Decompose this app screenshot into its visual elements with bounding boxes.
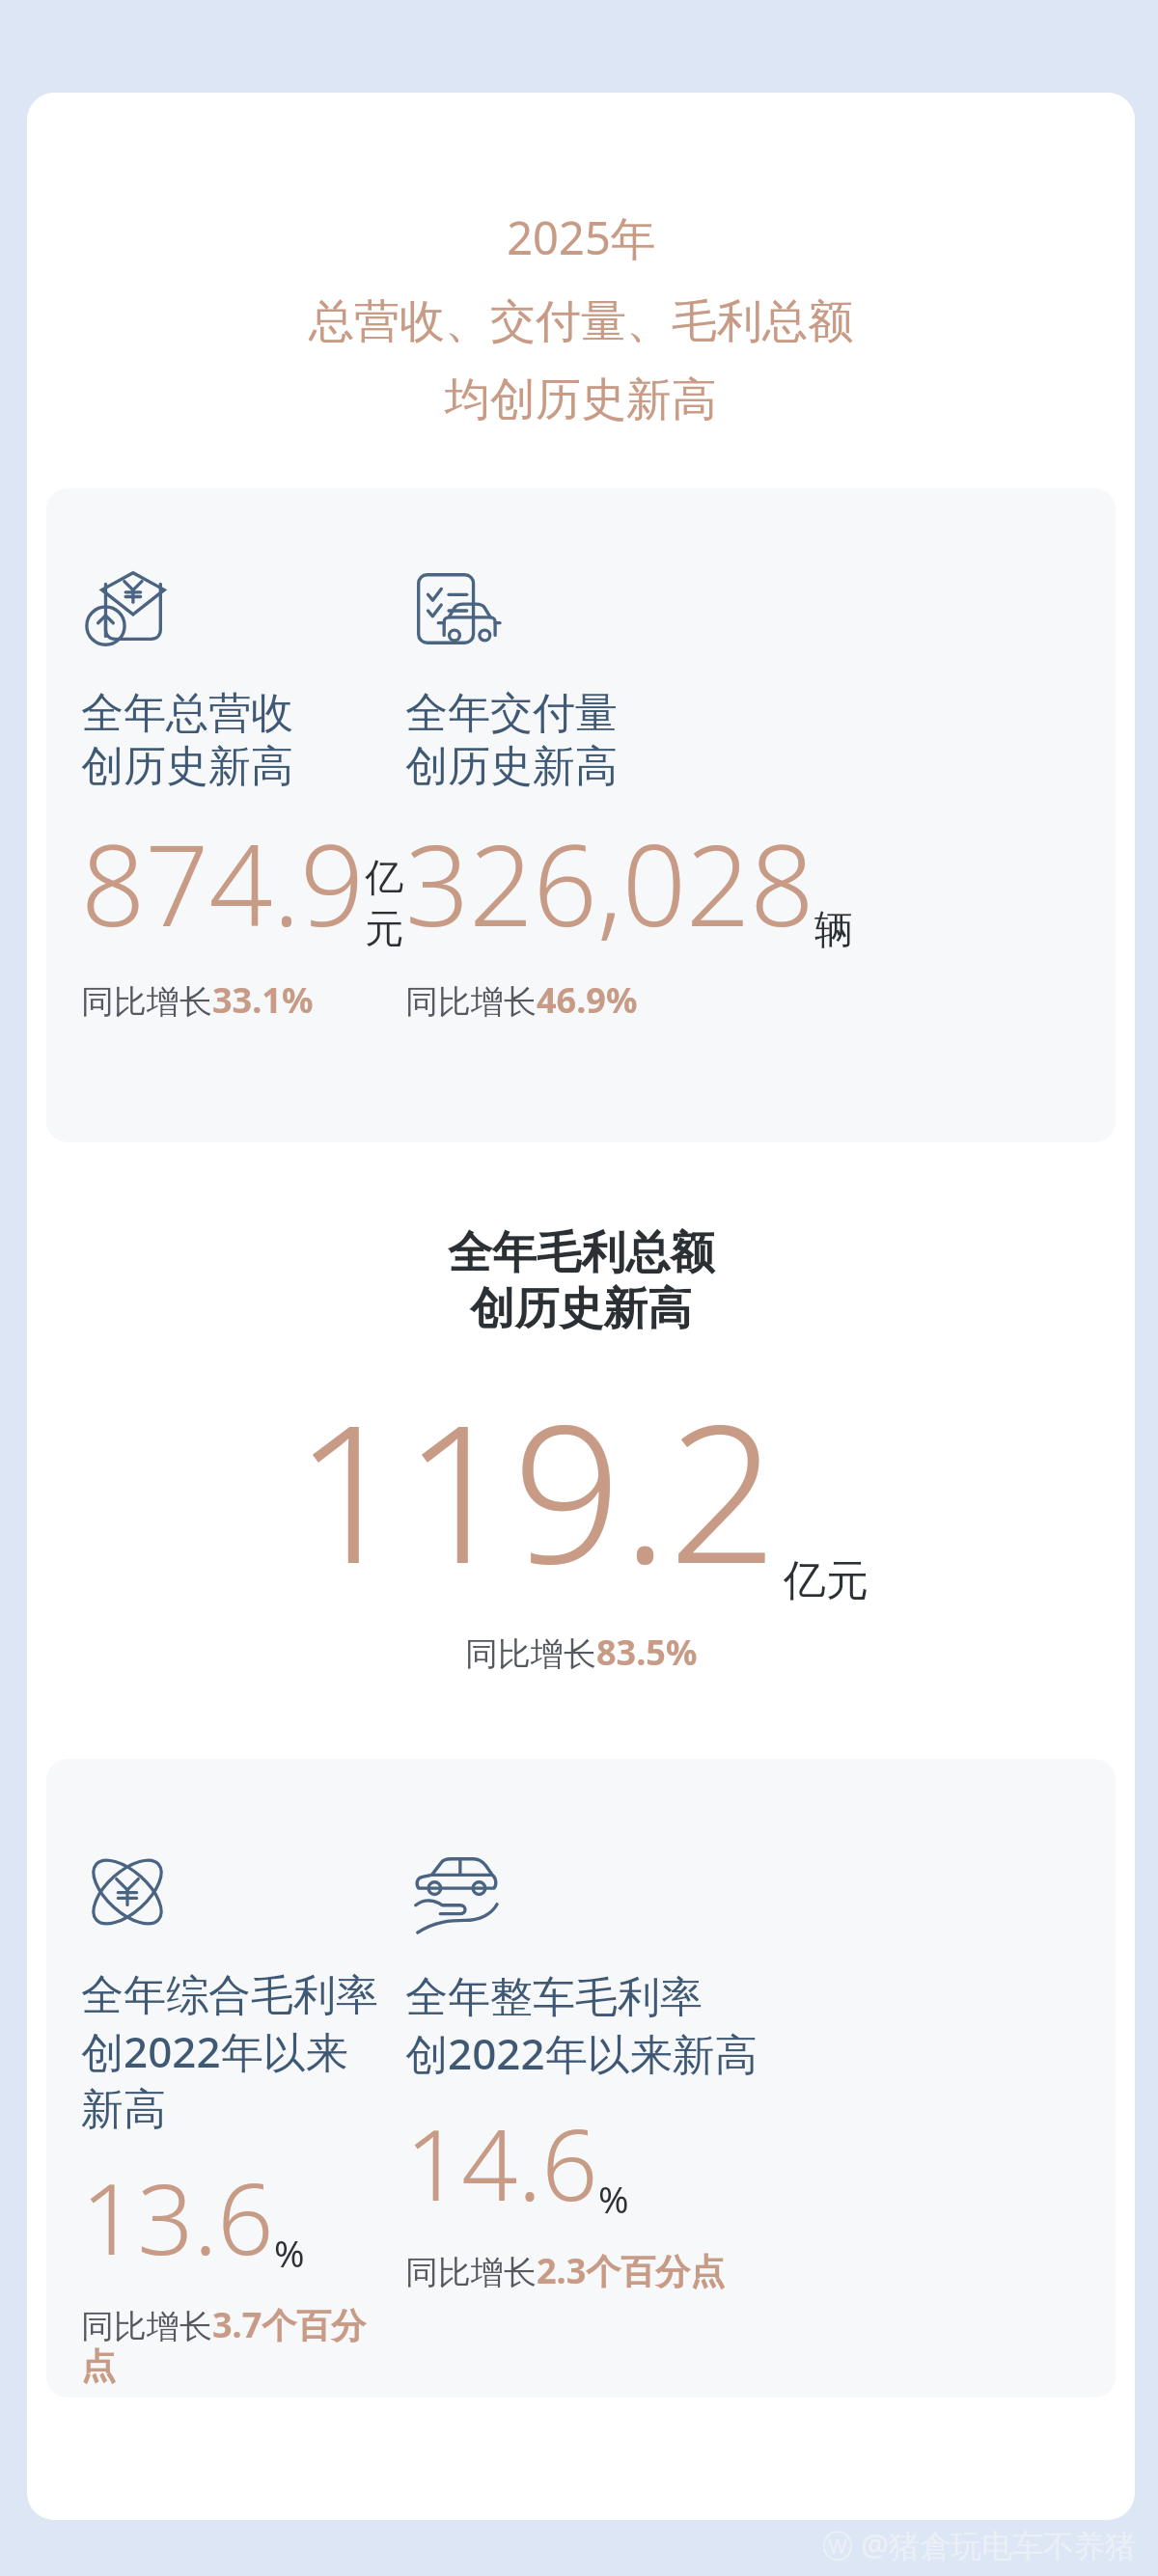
other: Total revenue	[81, 562, 176, 656]
staticText: 全年交付量	[405, 687, 618, 740]
staticText: 总营收、交付量、毛利总额	[309, 293, 853, 350]
staticText: 全年综合毛利率	[81, 1969, 378, 2022]
staticText: 创历史新高	[81, 740, 293, 793]
staticText: 326,028	[405, 807, 814, 959]
staticText: 全年总营收	[81, 687, 293, 740]
staticText: 14.6	[405, 2096, 598, 2230]
staticText: 创历史新高	[470, 1281, 692, 1337]
staticText: 创2022年以来新高	[405, 2024, 758, 2082]
staticText: 2025年	[507, 206, 656, 268]
button[interactable]: Gross profit margin	[81, 1846, 390, 2389]
staticText: 同比增长2.3个百分点	[405, 2247, 726, 2294]
staticText: 全年毛利总额	[448, 1225, 714, 1281]
staticText: 同比增长33.1%	[81, 976, 314, 1024]
staticText: 同比增长83.5%	[465, 1629, 698, 1676]
staticText: %	[274, 2228, 305, 2278]
staticText: 874.9	[81, 807, 365, 959]
staticText: ⓦ @猪倉玩电车不养猪	[822, 2524, 1137, 2566]
staticText: 创2022年以来新高	[81, 2022, 390, 2136]
button[interactable]: Total revenue	[81, 562, 390, 1024]
other: Gross profit margin	[81, 1846, 174, 1938]
staticText: 辆	[814, 905, 853, 953]
staticText: 亿元	[784, 1554, 868, 1607]
button[interactable]: Vehicle gross margin	[405, 1846, 1110, 2294]
staticText: %	[598, 2174, 629, 2224]
other: Deliveries	[405, 562, 500, 656]
staticText: 亿元	[365, 853, 390, 953]
staticText: 创历史新高	[405, 740, 618, 793]
staticText: 同比增长46.9%	[405, 976, 638, 1024]
staticText: 13.6	[81, 2150, 274, 2284]
staticText: 同比增长3.7个百分点	[81, 2301, 390, 2389]
button[interactable]: Deliveries	[405, 562, 1108, 1024]
other: Vehicle gross margin	[405, 1846, 500, 1940]
staticText: 全年整车毛利率	[405, 1971, 703, 2024]
staticText: 均创历史新高	[445, 371, 717, 428]
staticText: 119.2	[294, 1358, 778, 1619]
